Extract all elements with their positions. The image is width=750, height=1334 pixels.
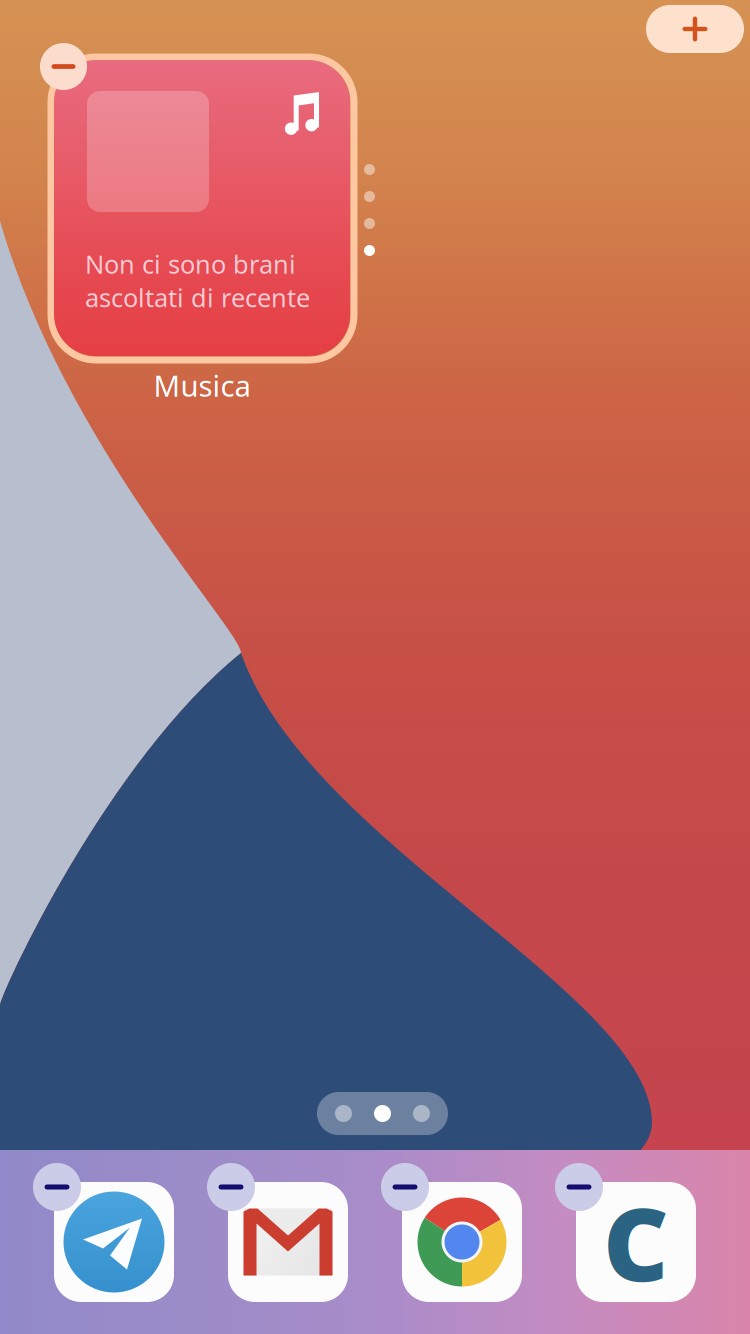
button[interactable]: Add widget [646, 5, 744, 53]
button[interactable]: Remove [33, 1163, 81, 1211]
staticText: Non ci sono brani [85, 247, 296, 281]
button[interactable]: Remove [555, 1163, 603, 1211]
button[interactable]: Non ci sono brani [54, 60, 350, 356]
button[interactable]: Gmail [228, 1182, 348, 1302]
button[interactable]: Remove [207, 1163, 255, 1211]
button[interactable]: Coursera [576, 1182, 696, 1302]
staticText: ascoltati di recente [85, 281, 310, 314]
button[interactable]: Remove [40, 43, 87, 90]
staticText: Musica [153, 366, 250, 405]
staticText: C [603, 1175, 669, 1309]
button[interactable]: Remove [381, 1163, 429, 1211]
button[interactable]: Telegram [54, 1182, 174, 1302]
button[interactable]: Chrome [402, 1182, 522, 1302]
